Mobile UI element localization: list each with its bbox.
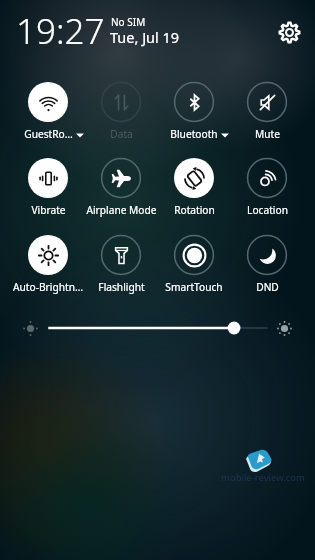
button[interactable]: Data — [84, 76, 158, 132]
staticText: Mute — [255, 127, 280, 141]
button[interactable]: Vibrate — [11, 152, 85, 208]
staticText: Vibrate — [31, 203, 66, 217]
staticText: Tue, Jul 19 — [110, 27, 180, 47]
button[interactable]: GuestRo… — [11, 76, 85, 132]
button[interactable]: DND — [230, 229, 304, 285]
button[interactable]: SmartTouch — [157, 229, 231, 285]
staticText: Airplane Mode — [86, 203, 157, 217]
staticText: Rotation — [174, 203, 215, 217]
staticText: mobile-review.com — [221, 471, 305, 484]
staticText: Data — [110, 127, 133, 141]
button[interactable]: Settings — [272, 15, 306, 49]
button[interactable]: Location — [230, 152, 304, 208]
staticText: Bluetooth — [170, 127, 218, 141]
button[interactable]: Bluetooth — [157, 76, 231, 132]
staticText: GuestRo… — [24, 127, 73, 141]
staticText: 19:27 — [16, 7, 105, 55]
button[interactable]: Rotation — [157, 152, 231, 208]
button[interactable]: Mute — [230, 76, 304, 132]
button[interactable]: Flashlight — [84, 229, 158, 285]
button[interactable]: Airplane Mode — [84, 152, 158, 208]
staticText: Flashlight — [98, 280, 145, 294]
button[interactable]: Auto-Brightn… — [11, 229, 85, 285]
staticText: DND — [256, 280, 279, 294]
staticText: Auto-Brightn… — [13, 280, 83, 294]
staticText: SmartTouch — [165, 280, 223, 294]
staticText: No SIM — [111, 15, 146, 29]
button[interactable]: Brightness — [42, 318, 274, 338]
staticText: Location — [247, 203, 288, 217]
